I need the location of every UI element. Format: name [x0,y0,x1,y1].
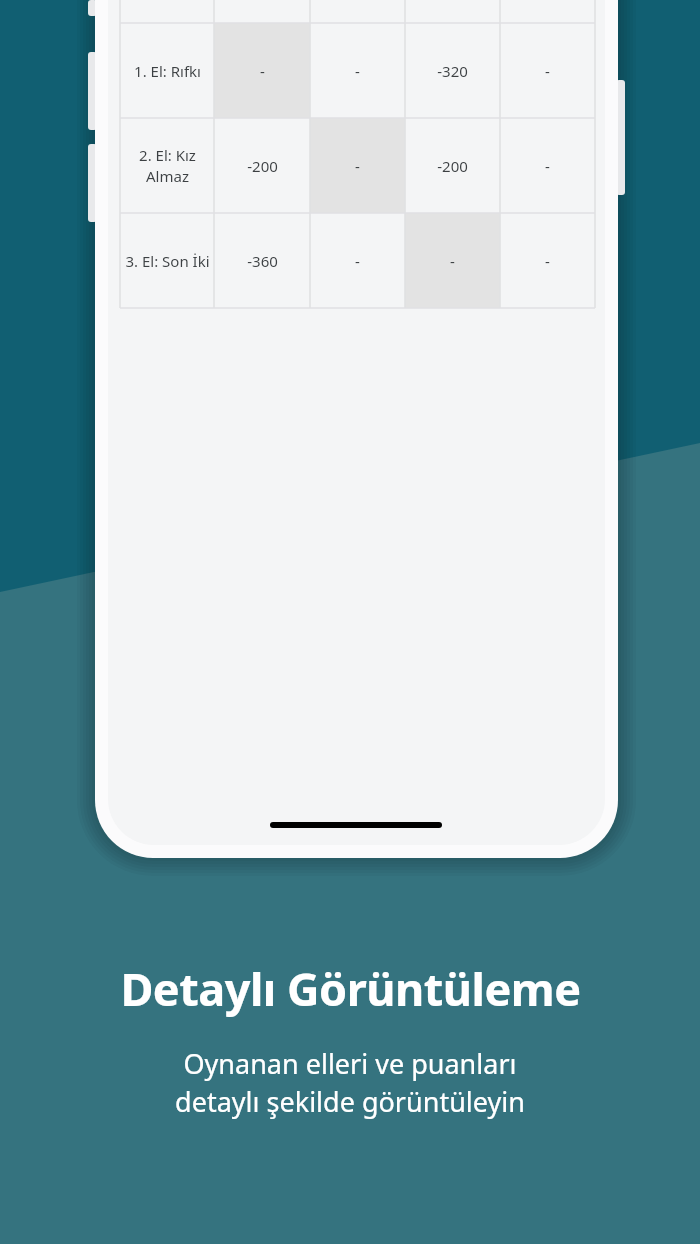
button[interactable]: 2. El: Kız Almaz [120,118,214,213]
button[interactable]: -200 [214,118,310,213]
staticText: - [545,251,550,271]
button[interactable]: - [405,213,500,308]
button[interactable]: -360 [214,213,310,308]
button[interactable]: - [310,213,405,308]
staticText: - [260,61,265,81]
staticText: - [355,61,360,81]
staticText: - [450,251,455,271]
staticText: -200 [247,156,278,176]
staticText: -320 [437,61,468,81]
button[interactable]: - [500,213,595,308]
staticText: - [355,251,360,271]
staticText: Oynanan elleri ve puanları detaylı şekil… [175,1045,525,1120]
button[interactable]: 3. El: Son İki [120,213,214,308]
button[interactable]: -320 [405,23,500,118]
staticText: 1. El: Rıfkı [134,61,201,81]
button[interactable]: - [310,23,405,118]
button[interactable]: - [500,23,595,118]
staticText: Detaylı Görüntüleme [120,958,581,1019]
staticText: -360 [247,251,278,271]
button[interactable]: 1. El: Rıfkı [120,23,214,118]
button[interactable]: - [500,118,595,213]
button[interactable]: - [214,23,310,118]
staticText: -200 [437,156,468,176]
staticText: 2. El: Kız Almaz [139,145,196,187]
button[interactable]: -200 [405,118,500,213]
button[interactable]: - [310,118,405,213]
staticText: - [355,156,360,176]
staticText: - [545,156,550,176]
staticText: 3. El: Son İki [125,251,210,271]
staticText: - [545,61,550,81]
